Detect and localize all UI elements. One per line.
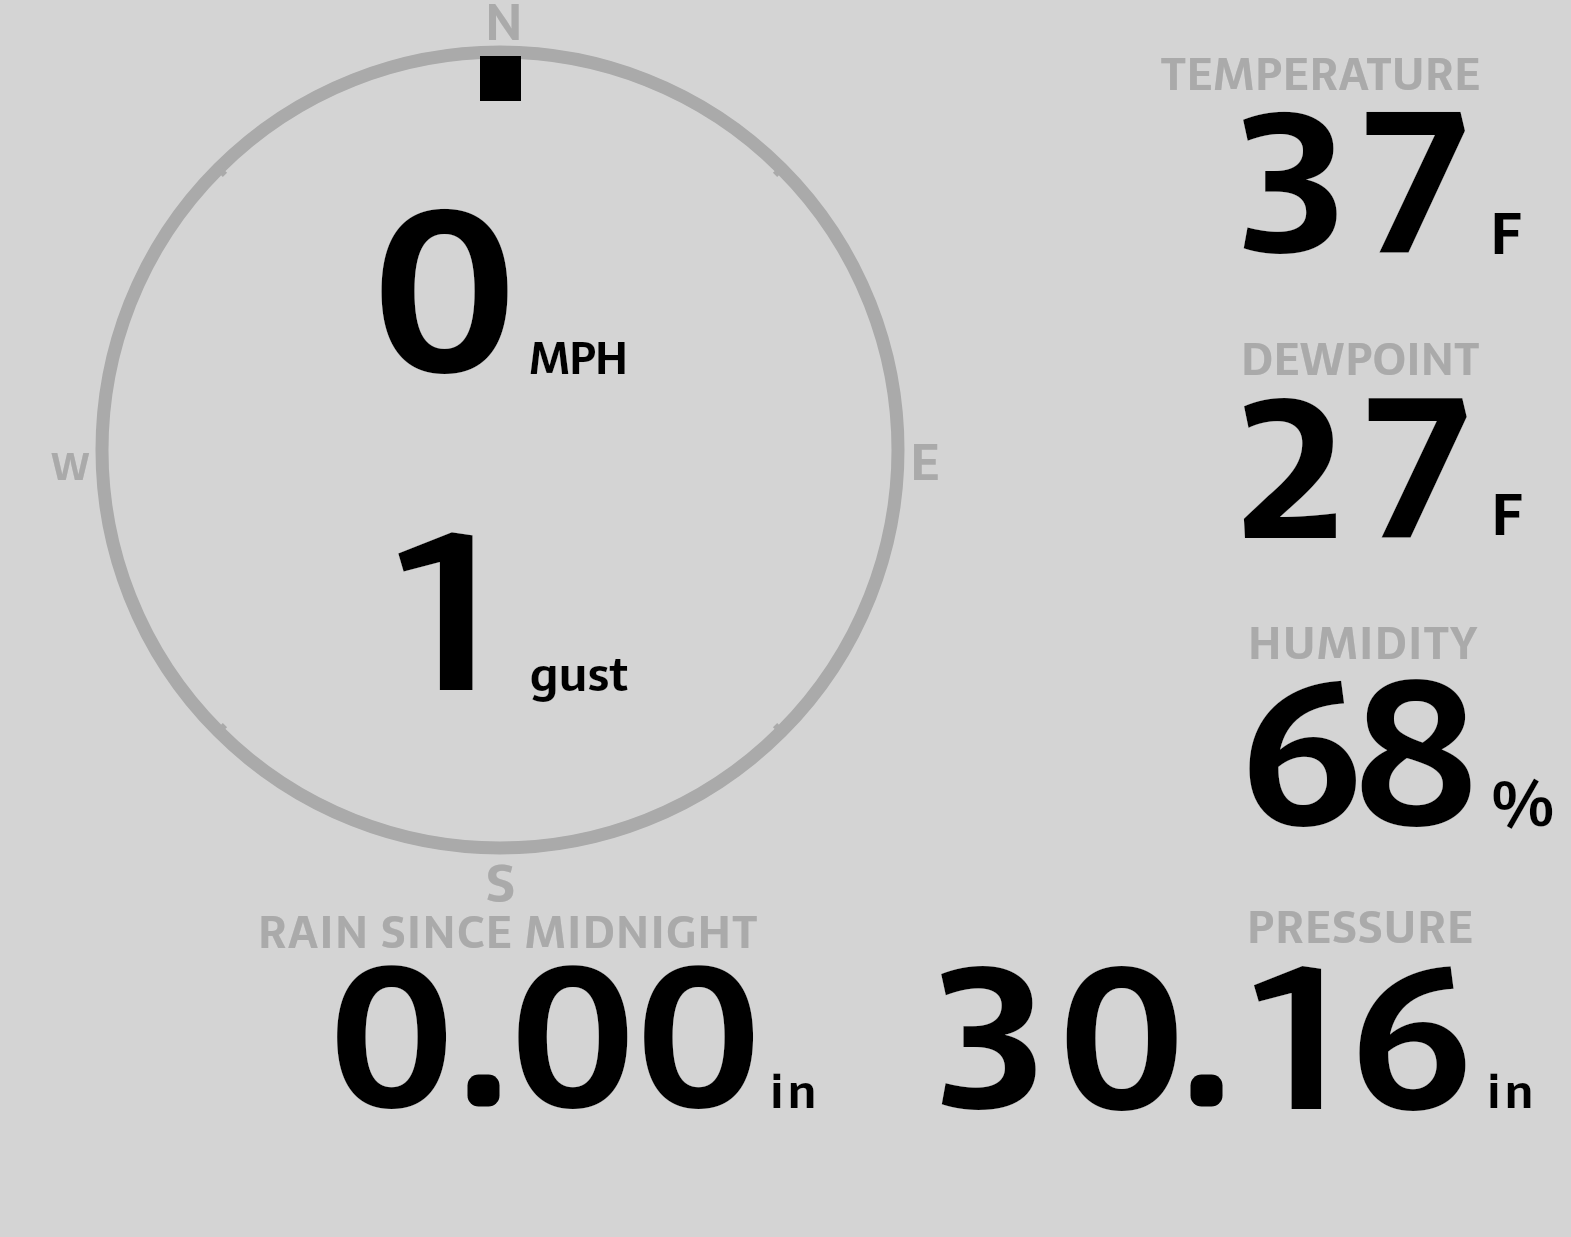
button[interactable]: Dewpoint 27 degrees Fahrenheit — [1150, 335, 1550, 550]
staticText: 68 — [1242, 590, 1470, 918]
staticText: S — [486, 841, 515, 926]
staticText: PRESSURE — [1247, 891, 1475, 963]
button[interactable]: Humidity 68 percent — [1150, 618, 1550, 833]
staticText: 30.16 — [936, 875, 1485, 1201]
staticText: W — [51, 436, 92, 498]
staticText: in — [1487, 1054, 1538, 1129]
button[interactable]: Temperature 37 degrees Fahrenheit — [1150, 50, 1550, 265]
button[interactable]: Wind direction compass, 0 miles per hour… — [95, 45, 907, 857]
staticText: 0.00 — [328, 875, 761, 1198]
button[interactable]: Pressure 30.16 inches — [930, 902, 1540, 1117]
staticText: DEWPOINT — [1241, 323, 1480, 395]
staticText: RAIN SINCE MIDNIGHT — [258, 896, 759, 968]
staticText: N — [485, 0, 523, 63]
staticText: MPH — [529, 322, 628, 394]
staticText: F — [1491, 468, 1523, 561]
staticText: 27 — [1238, 307, 1492, 628]
staticText: E — [910, 421, 940, 503]
staticText: F — [1490, 187, 1522, 280]
staticText: TEMPERATURE — [1161, 38, 1481, 110]
staticText: in — [770, 1054, 821, 1129]
staticText: 0 — [371, 104, 518, 477]
staticText: % — [1492, 752, 1554, 855]
staticText: 1 — [397, 431, 492, 791]
button[interactable]: Rain since midnight 0.00 inches — [250, 905, 825, 1120]
staticText: gust — [530, 637, 629, 712]
staticText: 37 — [1238, 21, 1487, 344]
staticText: HUMIDITY — [1248, 607, 1480, 679]
